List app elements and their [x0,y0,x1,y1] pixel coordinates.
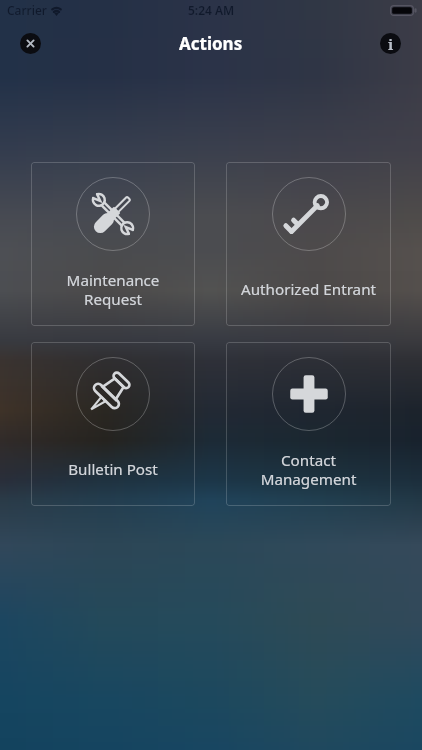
staticText: i [388,34,394,54]
staticText: Contact Management [226,450,391,489]
button[interactable]: Authorized Entrant [226,162,391,326]
button[interactable]: Info [380,33,401,54]
staticText: Actions [179,32,243,55]
button[interactable]: Maintenance Request [31,162,195,326]
button[interactable]: Contact Management [226,342,391,506]
staticText: Authorized Entrant [226,279,391,300]
staticText: Bulletin Post [31,459,195,480]
staticText: 5:24 AM [188,2,235,18]
button[interactable]: Close [20,33,41,54]
staticText: Maintenance Request [31,270,195,309]
staticText: Carrier [7,2,47,18]
button[interactable]: Bulletin Post [31,342,195,506]
